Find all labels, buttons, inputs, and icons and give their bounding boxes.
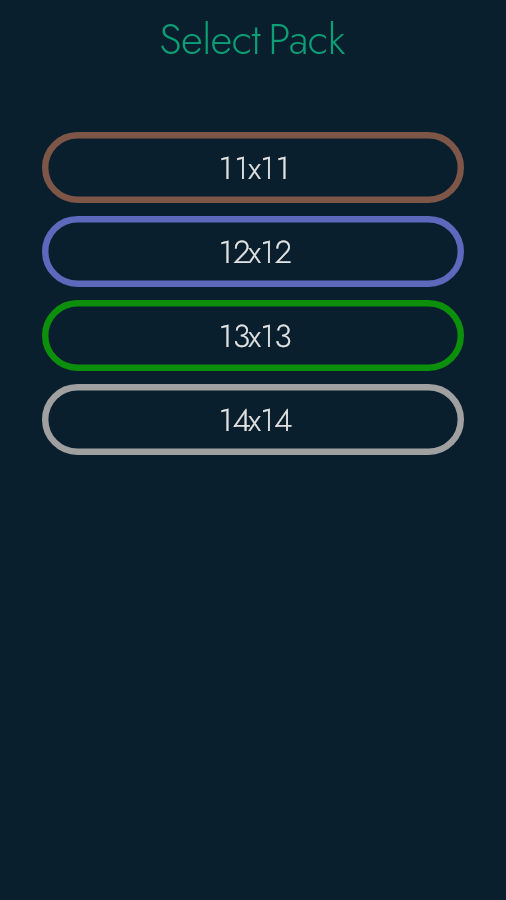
button[interactable]: 11x11: [42, 132, 464, 203]
staticText: Select Pack: [159, 9, 345, 70]
button[interactable]: 12x12: [42, 216, 464, 287]
staticText: 12x12: [217, 229, 290, 275]
staticText: 11x11: [217, 145, 290, 191]
button[interactable]: 13x13: [42, 300, 464, 371]
staticText: 14x14: [217, 397, 290, 443]
button[interactable]: 14x14: [42, 384, 464, 455]
staticText: 13x13: [217, 313, 290, 359]
